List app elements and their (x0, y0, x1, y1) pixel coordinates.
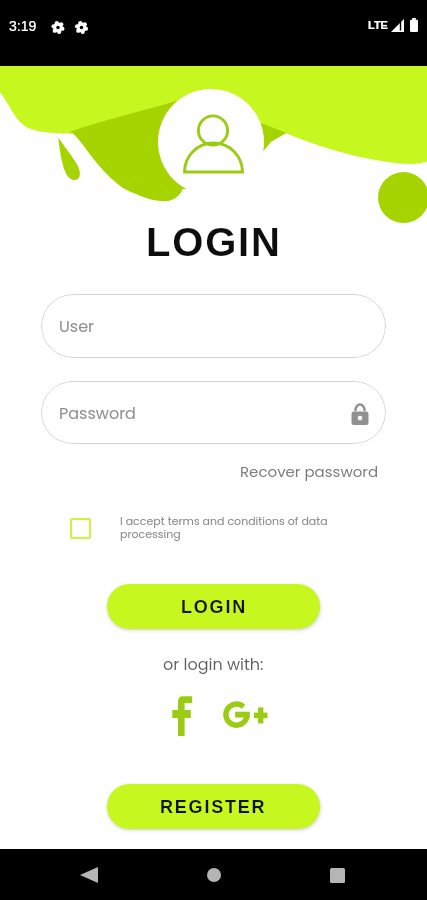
button[interactable]: Password (41, 381, 386, 444)
button[interactable]: User (41, 294, 386, 358)
button[interactable]: LOGIN (107, 584, 320, 629)
staticText: LTE (368, 19, 388, 31)
button[interactable]: Recent apps (314, 852, 360, 898)
staticText: 3:19 (9, 18, 37, 34)
button[interactable]: Home (191, 852, 237, 898)
staticText: REGISTER (160, 797, 267, 817)
button[interactable]: Recover password (240, 461, 379, 482)
staticText: User (59, 315, 95, 337)
button[interactable]: Accept terms checkbox (70, 518, 91, 539)
staticText: Password (59, 402, 136, 424)
button[interactable]: Login with Facebook (163, 688, 201, 742)
button[interactable]: Login with Google (216, 691, 276, 739)
staticText: I accept terms and conditions of data pr… (120, 513, 344, 542)
staticText: or login with: (163, 653, 264, 675)
staticText: LOGIN (146, 220, 282, 265)
staticText: LOGIN (181, 597, 247, 617)
button[interactable]: Back (66, 852, 112, 898)
button[interactable]: REGISTER (107, 784, 320, 829)
